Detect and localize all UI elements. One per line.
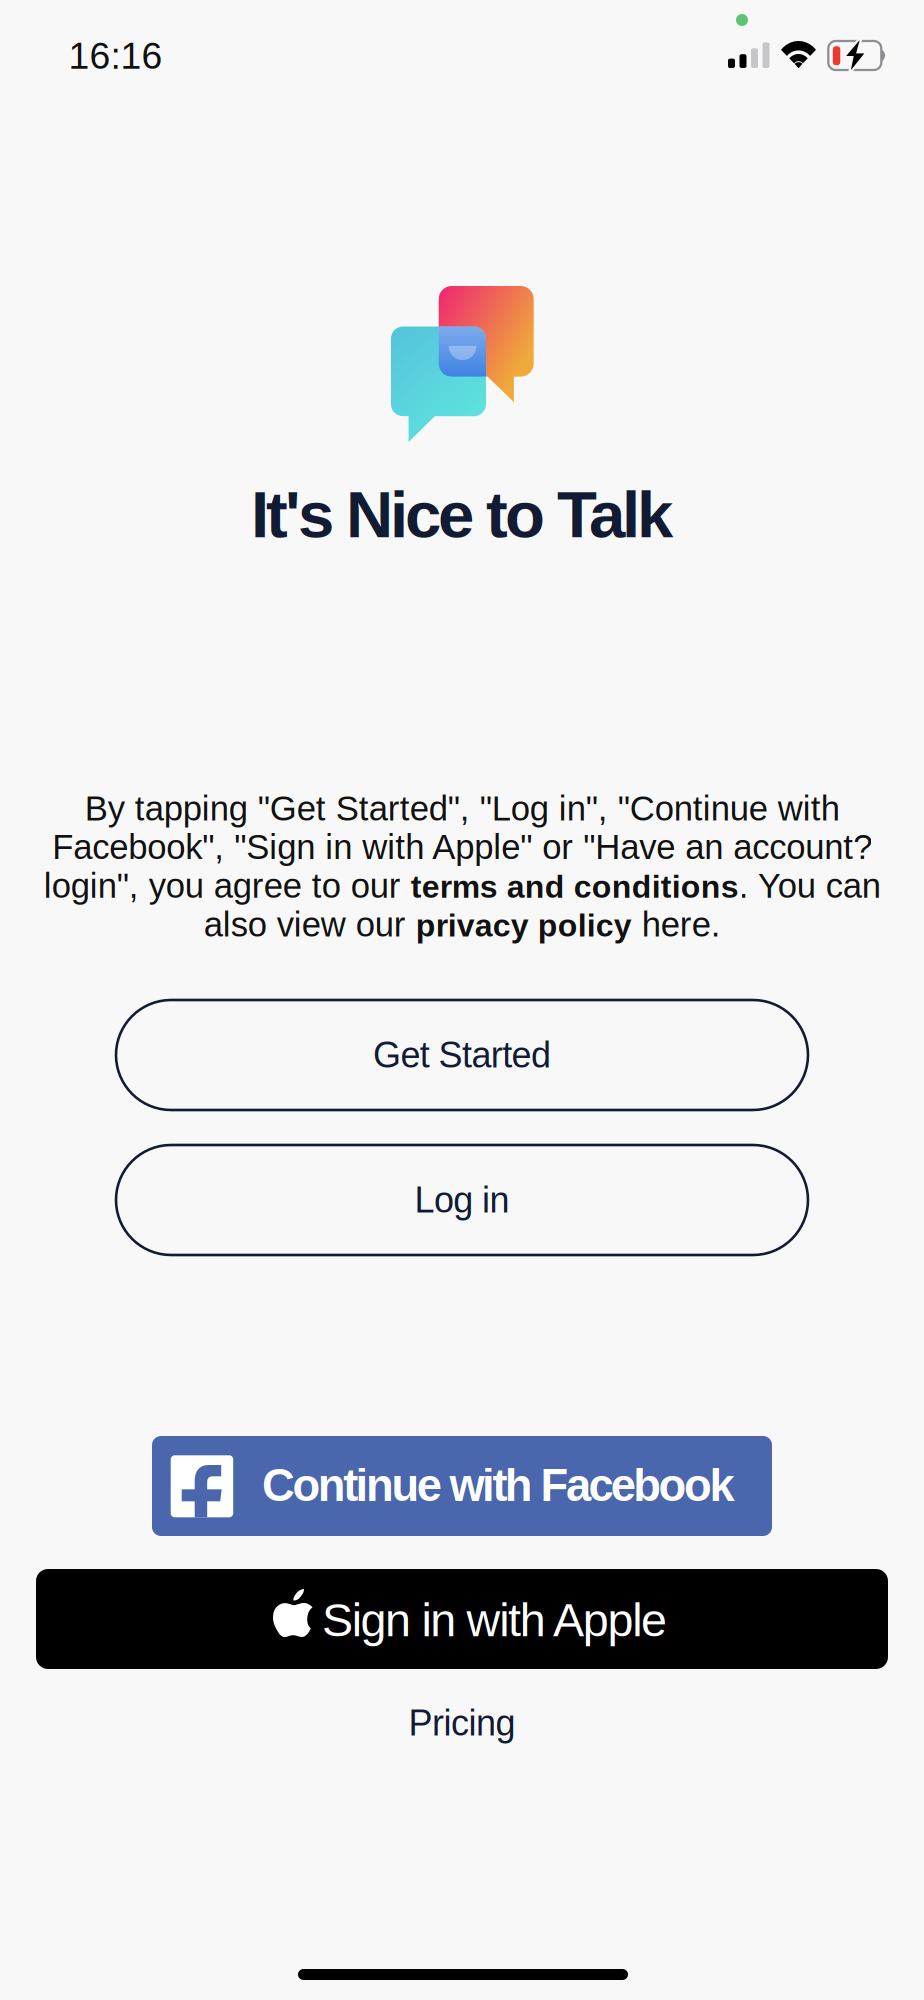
staticText: 16:16 <box>68 35 162 77</box>
staticText: Get Started <box>373 1035 551 1075</box>
staticText: It's Nice to Talk <box>251 478 673 551</box>
button[interactable]: Get Started <box>116 1000 808 1110</box>
button[interactable]: Sign in with Apple <box>36 1569 888 1669</box>
button[interactable]: Log in <box>116 1145 808 1255</box>
staticText: By tapping "Get Started", "Log in", "Con… <box>43 789 880 944</box>
button[interactable]: Pricing <box>342 1693 582 1753</box>
staticText: Pricing <box>408 1703 515 1743</box>
staticText: Continue with Facebook <box>262 1460 734 1511</box>
button[interactable]: Continue with Facebook <box>152 1436 772 1536</box>
staticText: Log in <box>414 1180 509 1220</box>
staticText: Sign in with Apple <box>322 1594 667 1646</box>
